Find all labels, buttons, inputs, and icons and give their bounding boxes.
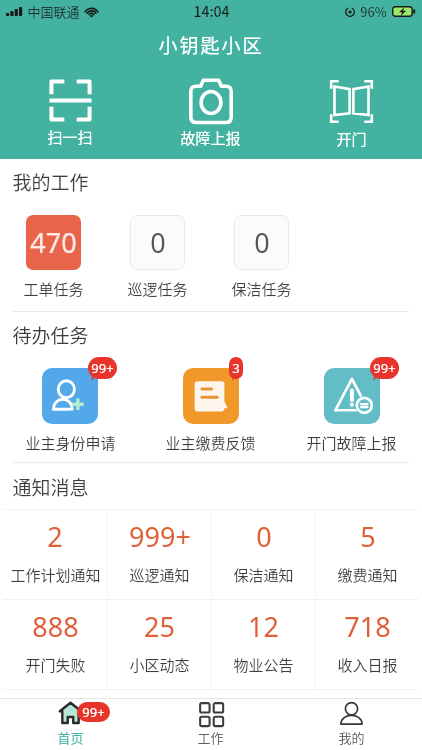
staticText: 25	[144, 608, 175, 645]
staticText: 首页	[57, 728, 84, 747]
staticText: 99+	[373, 359, 396, 377]
staticText: 收入日报	[337, 654, 398, 676]
staticText: 888	[32, 608, 79, 645]
staticText: 物业公告	[233, 654, 294, 676]
staticText: 小钥匙小区	[158, 31, 264, 59]
staticText: 0	[256, 518, 272, 555]
staticText: 12	[248, 608, 279, 645]
button[interactable]: 0	[130, 215, 185, 300]
other: Profile	[340, 702, 363, 725]
staticText: 业主缴费反馈	[165, 432, 256, 454]
button[interactable]: 0	[234, 215, 289, 300]
staticText: 718	[344, 608, 391, 645]
button[interactable]: 99+	[0, 368, 140, 454]
staticText: 3	[232, 359, 240, 377]
staticText: 0	[254, 224, 270, 261]
button[interactable]: Work	[140, 699, 281, 750]
other: Home	[59, 702, 82, 725]
staticText: 巡逻通知	[129, 564, 190, 586]
staticText: 我的	[338, 728, 365, 747]
button[interactable]: 5	[316, 510, 419, 599]
staticText: 保洁通知	[233, 564, 294, 586]
button[interactable]: 999+	[108, 510, 211, 599]
staticText: 扫一扫	[47, 126, 93, 148]
button[interactable]: 3	[140, 368, 281, 454]
other: Open door	[329, 79, 374, 124]
staticText: 999+	[129, 518, 191, 555]
button[interactable]: 2	[3, 510, 107, 599]
staticText: 开门故障上报	[306, 432, 397, 454]
button[interactable]: Scan	[0, 79, 140, 148]
staticText: 小区动态	[129, 654, 190, 676]
button[interactable]: 470	[26, 215, 81, 300]
staticText: 缴费通知	[337, 564, 398, 586]
staticText: 开门失败	[25, 654, 86, 676]
button[interactable]: 99+	[281, 368, 422, 454]
button[interactable]: Profile	[281, 699, 422, 750]
staticText: 99+	[91, 359, 114, 377]
button[interactable]: 25	[108, 600, 211, 689]
other: Report fault	[189, 79, 233, 123]
staticText: 工作	[197, 728, 224, 747]
staticText: 中国联通	[27, 2, 80, 21]
staticText: 2	[47, 518, 63, 555]
staticText: 工作计划通知	[10, 564, 101, 586]
staticText: 470	[30, 224, 77, 261]
staticText: 5	[360, 518, 376, 555]
staticText: 99+	[82, 703, 105, 721]
staticText: 保洁任务	[231, 278, 292, 300]
other: Work	[199, 702, 222, 725]
staticText: 工单任务	[23, 278, 84, 300]
button[interactable]: 888	[3, 600, 107, 689]
staticText: 0	[150, 224, 166, 261]
staticText: 故障上报	[180, 127, 241, 149]
staticText: 巡逻任务	[127, 278, 188, 300]
staticText: 通知消息	[12, 473, 89, 501]
staticText: 开门	[336, 128, 367, 150]
button[interactable]: 0	[212, 510, 315, 599]
staticText: 96%	[360, 2, 387, 21]
other: Scan	[49, 79, 92, 122]
button[interactable]: 718	[316, 600, 419, 689]
staticText: 待办任务	[12, 321, 89, 349]
staticText: 业主身份申请	[25, 432, 116, 454]
staticText: 14:04	[193, 1, 230, 21]
button[interactable]: Home	[0, 699, 140, 750]
button[interactable]: Report fault	[140, 79, 281, 149]
button[interactable]: Open door	[281, 79, 422, 150]
staticText: 我的工作	[12, 168, 89, 196]
button[interactable]: 12	[212, 600, 315, 689]
